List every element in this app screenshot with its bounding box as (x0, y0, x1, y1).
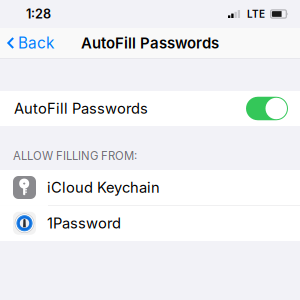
staticText: Back (18, 34, 54, 52)
staticText: ALLOW FILLING FROM: (13, 149, 137, 163)
button[interactable]: Back (0, 27, 62, 59)
staticText: LTE (247, 8, 265, 20)
button[interactable]: 1Password (0, 205, 300, 241)
button[interactable]: iCloud Keychain (0, 170, 300, 205)
staticText: iCloud Keychain (47, 179, 160, 196)
staticText: 1:28 (26, 6, 51, 22)
staticText: 1Password (47, 214, 121, 232)
button[interactable]: AutoFill Passwords (0, 91, 300, 126)
staticText: AutoFill Passwords (14, 100, 148, 117)
staticText: AutoFill Passwords (81, 34, 219, 52)
